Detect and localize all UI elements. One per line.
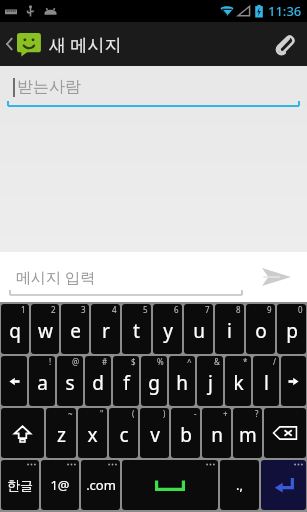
button[interactable]: ! xyxy=(29,356,55,406)
button[interactable]: ? xyxy=(233,408,262,458)
staticText: - xyxy=(194,408,197,419)
staticText: e xyxy=(70,318,81,344)
staticText: 2 xyxy=(51,304,56,315)
button[interactable]: Shift xyxy=(1,408,44,458)
staticText: 6 xyxy=(174,304,179,315)
staticText: % xyxy=(157,356,164,367)
staticText: g xyxy=(148,370,160,396)
button[interactable]: * xyxy=(225,356,251,406)
staticText: * xyxy=(243,356,248,367)
button[interactable]: ( xyxy=(109,408,138,458)
staticText: 5 xyxy=(143,304,148,315)
button[interactable]: ~ xyxy=(46,408,76,458)
staticText: 한글 xyxy=(7,477,33,493)
staticText: 11:36 xyxy=(268,2,302,20)
button[interactable]: 8 xyxy=(215,304,244,354)
staticText: o xyxy=(255,318,267,344)
staticText: ., xyxy=(236,476,243,494)
staticText: y xyxy=(163,318,173,344)
staticText: q xyxy=(9,318,21,344)
staticText: ! xyxy=(49,356,52,367)
staticText: ? xyxy=(255,408,259,419)
staticText: f xyxy=(123,370,130,396)
staticText: j xyxy=(208,370,213,396)
button[interactable]: 5 xyxy=(122,304,151,354)
staticText: 받는사람 xyxy=(17,77,81,97)
staticText: h xyxy=(176,370,188,396)
button[interactable]: # xyxy=(85,356,111,406)
button[interactable]: - xyxy=(171,408,200,458)
button[interactable]: ^ xyxy=(169,356,195,406)
staticText: # xyxy=(102,356,108,367)
button[interactable]: 한글 xyxy=(1,460,39,510)
button[interactable]: 4 xyxy=(91,304,120,354)
button[interactable]: ) xyxy=(140,408,169,458)
button[interactable]: 1 xyxy=(1,304,29,354)
button[interactable]: ., xyxy=(220,460,259,510)
staticText: + xyxy=(223,408,228,419)
staticText: p xyxy=(286,318,298,344)
staticText: w xyxy=(38,318,53,344)
staticText: 메시지 입력 xyxy=(16,267,95,287)
button[interactable]: % xyxy=(141,356,167,406)
staticText: s xyxy=(65,370,75,396)
button[interactable]: .com xyxy=(81,460,120,510)
button[interactable]: Backspace xyxy=(264,408,306,458)
staticText: v xyxy=(150,422,160,448)
staticText: n xyxy=(211,422,223,448)
staticText: 8 xyxy=(236,304,241,315)
button[interactable]: Enter xyxy=(261,460,306,510)
button[interactable]: 메시지 입력 xyxy=(10,258,242,296)
staticText: x xyxy=(87,422,98,448)
staticText: 7 xyxy=(205,304,210,315)
button[interactable]: & xyxy=(197,356,223,406)
staticText: 9 xyxy=(267,304,272,315)
staticText: b xyxy=(180,422,192,448)
staticText: ) xyxy=(163,408,166,419)
button[interactable]: 9 xyxy=(246,304,275,354)
button[interactable]: " xyxy=(78,408,107,458)
staticText: 1 xyxy=(21,304,26,315)
staticText: .com xyxy=(86,476,116,494)
staticText: u xyxy=(193,318,205,344)
button[interactable]: 3 xyxy=(61,304,89,354)
staticText: l xyxy=(264,370,269,396)
staticText: " xyxy=(100,408,104,419)
staticText: $ xyxy=(131,356,136,367)
staticText: 1@ xyxy=(50,476,70,494)
staticText: / xyxy=(273,356,276,367)
button[interactable]: 6 xyxy=(153,304,182,354)
staticText: m xyxy=(239,422,257,448)
staticText: 0 xyxy=(298,304,303,315)
button[interactable]: 새 메시지 xyxy=(0,22,130,66)
staticText: 3 xyxy=(81,304,86,315)
staticText: 새 메시지 xyxy=(49,33,122,56)
staticText: d xyxy=(92,370,104,396)
button[interactable]: Space xyxy=(122,460,218,510)
staticText: 4 xyxy=(112,304,117,315)
staticText: i xyxy=(227,318,232,344)
button[interactable]: Send xyxy=(245,252,307,302)
button[interactable]: 0 xyxy=(277,304,306,354)
staticText: t xyxy=(133,318,140,344)
button[interactable]: 받는사람 xyxy=(0,66,307,108)
staticText: & xyxy=(214,356,220,367)
button[interactable]: Move cursor right xyxy=(281,356,306,406)
button[interactable]: 1@ xyxy=(41,460,79,510)
button[interactable]: Move cursor left xyxy=(1,356,27,406)
staticText: z xyxy=(57,422,66,448)
staticText: ^ xyxy=(187,356,192,367)
staticText: a xyxy=(37,370,48,396)
button[interactable]: 2 xyxy=(31,304,59,354)
button[interactable]: / xyxy=(253,356,279,406)
button[interactable]: @ xyxy=(57,356,83,406)
staticText: k xyxy=(233,370,244,396)
staticText: r xyxy=(102,318,110,344)
button[interactable]: 7 xyxy=(184,304,213,354)
staticText: c xyxy=(119,422,129,448)
button[interactable]: + xyxy=(202,408,231,458)
staticText: ~ xyxy=(68,408,73,419)
button[interactable]: Attach xyxy=(261,22,307,66)
button[interactable]: $ xyxy=(113,356,139,406)
staticText: @ xyxy=(72,356,80,367)
